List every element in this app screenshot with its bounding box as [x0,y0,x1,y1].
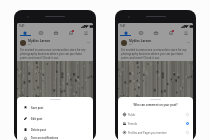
staticText: 9:41 [120,24,126,28]
staticText: ··· [187,41,190,45]
button[interactable]: Delete post [17,124,93,135]
staticText: ··· [87,41,90,45]
staticText: I'm excited to announce a new online sto… [20,48,90,60]
staticText: Public [128,113,186,117]
button[interactable]: Public [118,110,193,119]
staticText: Mykles Larson [129,39,152,43]
staticText: Turn on notifications [31,136,58,140]
staticText: 2h · [129,43,133,46]
button[interactable]: Profiles and Pages you mention [118,128,193,137]
staticText: Edit post [31,117,43,121]
staticText: Profiles and Pages you mention [128,131,186,135]
button[interactable]: Friends [118,119,193,128]
button[interactable]: Video [33,29,48,36]
button[interactable]: Marketplace [148,29,163,36]
button[interactable]: Notifications [163,29,178,36]
button[interactable]: Turn on notifications [17,135,93,140]
staticText: 2h · [28,43,32,46]
staticText: Delete post [31,128,46,132]
staticText: Friends [128,122,186,126]
staticText: Save post [31,106,44,110]
button[interactable]: Notifications [63,29,78,36]
button[interactable]: Save post [17,102,93,113]
staticText: I'm excited to announce a new online sto… [121,48,190,60]
button[interactable]: Edit post [17,113,93,124]
button[interactable]: Home [17,29,33,36]
button[interactable]: Menu [178,29,193,36]
staticText: Mykles Larson [28,39,51,43]
staticText: Who can comment on your post? [118,103,193,107]
button[interactable]: Video [133,29,148,36]
staticText: 9:41 [19,24,25,28]
button[interactable]: Menu [78,29,93,36]
button[interactable]: Marketplace [48,29,63,36]
button[interactable]: Home [118,29,133,36]
